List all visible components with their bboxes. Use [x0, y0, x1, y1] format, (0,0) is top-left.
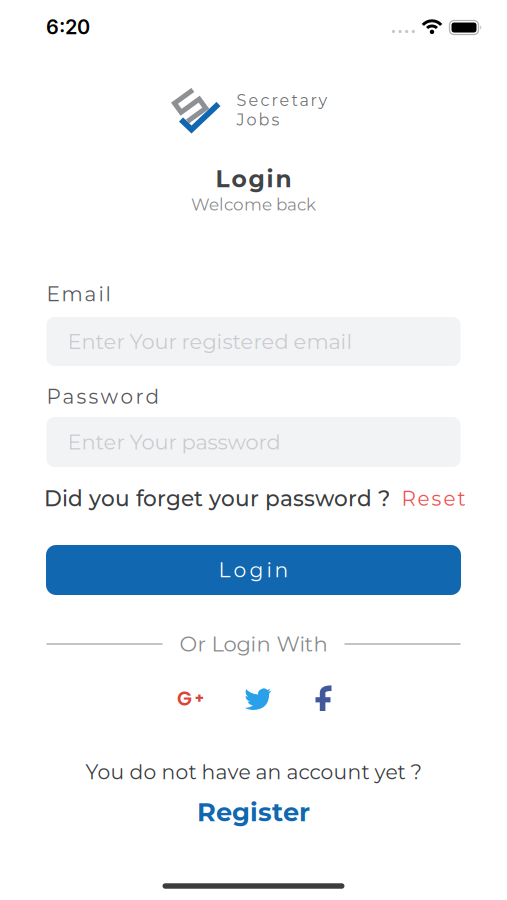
staticText: Enter Your password [67, 429, 280, 455]
staticText: J o b s [236, 110, 279, 129]
staticText: + [195, 687, 204, 708]
staticText: Welcome back [191, 194, 316, 215]
staticText: 6:20 [46, 15, 90, 39]
staticText: R e s e t [401, 486, 465, 511]
button[interactable]: Register [197, 796, 310, 828]
button[interactable]: Sign in with Twitter [244, 686, 272, 710]
staticText: L o g i n [215, 165, 291, 193]
button[interactable]: L o g i n [46, 545, 461, 595]
staticText: Did you forget your password ? [44, 485, 390, 512]
staticText: S e c r e t a r y [236, 90, 327, 110]
button[interactable]: R e s e t [401, 486, 465, 511]
staticText: Register [197, 796, 310, 828]
button[interactable]: Sign in with Google [172, 685, 208, 711]
staticText: Enter Your registered email [67, 329, 352, 354]
staticText: P a s s w o r d [46, 384, 159, 409]
staticText: E m a i l [46, 282, 110, 306]
button[interactable]: Sign in with Facebook [315, 685, 333, 711]
staticText: L o g i n [218, 558, 288, 582]
staticText: You do not have an account yet ? [85, 760, 421, 784]
staticText: G [177, 685, 192, 712]
staticText: Or Login With [179, 631, 327, 657]
